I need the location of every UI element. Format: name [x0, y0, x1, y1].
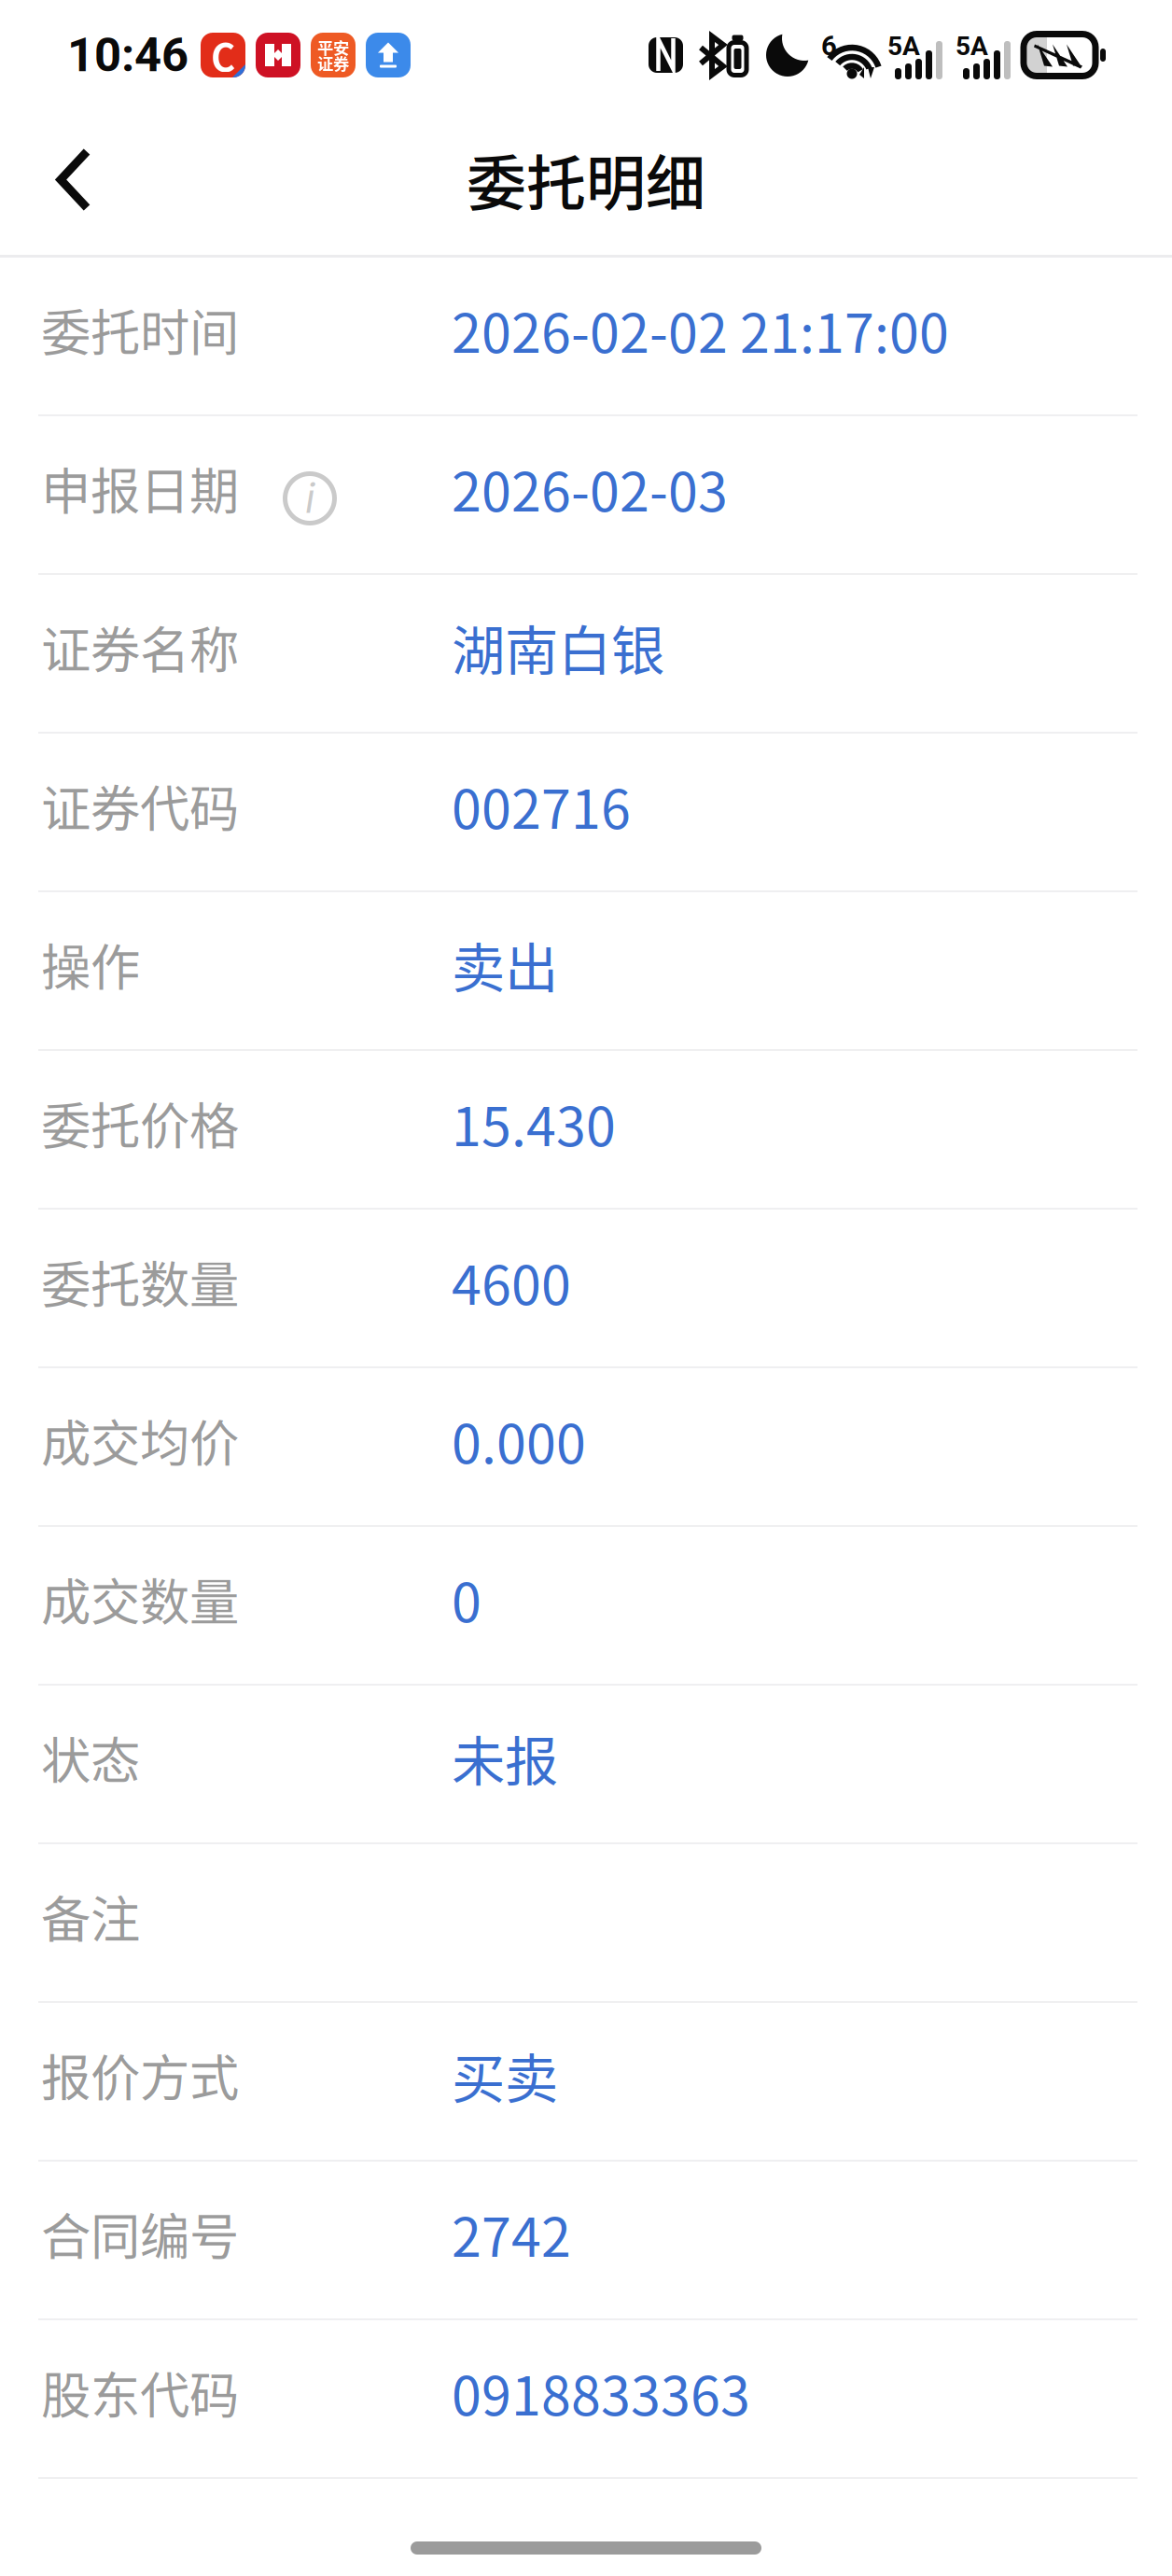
button[interactable]: 状态 — [0, 1686, 1172, 1844]
staticText: 报价方式 — [41, 2039, 239, 2111]
button[interactable]: 操作 — [0, 892, 1172, 1051]
button[interactable]: 成交数量 — [0, 1527, 1172, 1686]
staticText: 状态 — [41, 1721, 140, 1793]
staticText: 5A — [956, 31, 988, 61]
staticText: 0 — [452, 1560, 481, 1638]
staticText: 委托数量 — [41, 1245, 239, 1317]
staticText: C — [211, 28, 235, 82]
staticText: 2026-02-03 — [452, 449, 728, 527]
staticText: 2026-02-02 21:17:00 — [452, 291, 949, 368]
staticText: 湖南白银 — [452, 608, 664, 686]
button[interactable]: 证券代码 — [0, 734, 1172, 892]
staticText: 委托价格 — [41, 1087, 239, 1159]
staticText: 6 — [821, 30, 837, 62]
button[interactable]: 备注 — [0, 1844, 1172, 2003]
staticText: 未报 — [452, 1719, 558, 1796]
staticText: 股东代码 — [41, 2356, 239, 2428]
staticText: 平安 — [317, 35, 349, 59]
staticText: 10:46 — [67, 27, 188, 83]
staticText: 4600 — [452, 1243, 571, 1320]
staticText: 合同编号 — [41, 2197, 239, 2269]
staticText: 15.430 — [452, 1084, 616, 1162]
staticText: 操作 — [41, 928, 140, 1000]
staticText: 成交数量 — [41, 1563, 239, 1635]
button[interactable]: 合同编号 — [0, 2162, 1172, 2320]
button[interactable]: 申报日期 — [0, 416, 1172, 575]
staticText: 002716 — [452, 767, 631, 844]
button[interactable]: 委托价格 — [0, 1051, 1172, 1210]
staticText: 证券名称 — [41, 611, 239, 683]
staticText: 备注 — [41, 1880, 140, 1952]
staticText: 委托时间 — [41, 293, 239, 365]
staticText: i — [305, 474, 314, 522]
staticText: 0.000 — [452, 1401, 586, 1479]
staticText: 成交均价 — [41, 1404, 239, 1476]
button[interactable]: 证券名称 — [0, 575, 1172, 734]
staticText: 0918833363 — [452, 2353, 750, 2431]
button[interactable]: 委托数量 — [0, 1210, 1172, 1368]
button[interactable]: 委托时间 — [0, 258, 1172, 416]
button[interactable]: 成交均价 — [0, 1368, 1172, 1527]
button[interactable]: 报价方式 — [0, 2003, 1172, 2162]
staticText: 申报日期 — [41, 452, 239, 524]
staticText: 证券代码 — [41, 769, 239, 841]
staticText: 买卖 — [452, 2036, 558, 2114]
staticText: 5A — [887, 31, 920, 61]
button[interactable]: 股东代码 — [0, 2320, 1172, 2479]
staticText: 2742 — [452, 2195, 571, 2272]
staticText: 证券 — [317, 51, 349, 75]
button[interactable]: Back — [0, 119, 135, 246]
staticText: 卖出 — [452, 925, 558, 1003]
staticText: 委托明细 — [467, 136, 705, 222]
